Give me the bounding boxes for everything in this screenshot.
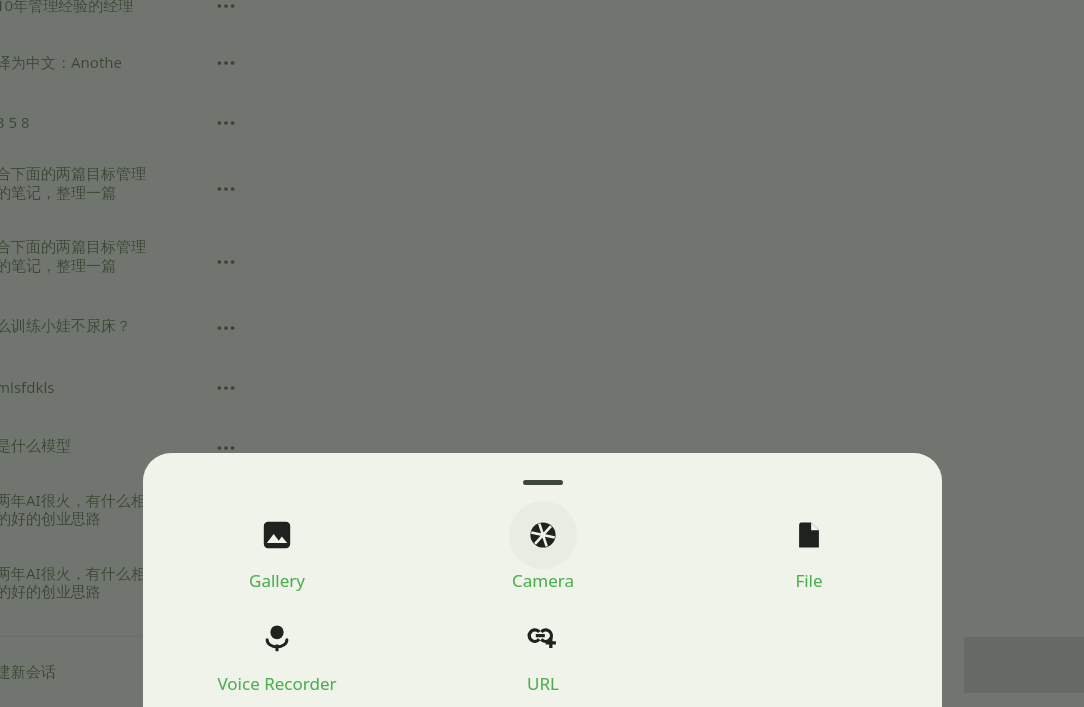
staticText: 两年AI很火，有什么相 [0, 490, 146, 510]
button[interactable]: 建新会话 [0, 637, 268, 707]
button[interactable]: More options [208, 45, 244, 81]
button[interactable]: More options [208, 310, 244, 346]
staticText: URL [527, 672, 559, 695]
staticText: 的笔记，整理一篇 [0, 257, 116, 276]
staticText: Gallery [249, 569, 305, 592]
staticText: 么训练小娃不尿床？ [0, 317, 131, 336]
button[interactable]: Gallery [143, 501, 410, 592]
staticText: 的好的创业思路 [0, 510, 101, 529]
staticText: 译为中文：Anothe [0, 52, 123, 72]
staticText: 是什么模型 [0, 437, 71, 456]
staticText: Voice Recorder [217, 672, 337, 695]
button[interactable]: Camera [410, 501, 676, 592]
staticText: 的笔记，整理一篇 [0, 184, 116, 203]
staticText: Camera [512, 569, 574, 592]
button[interactable]: More options [208, 244, 244, 280]
button[interactable]: File [676, 501, 942, 592]
staticText: 3 5 8 [0, 112, 30, 132]
button[interactable]: More options [208, 370, 244, 406]
staticText: 10年管理经验的经理 [0, 0, 134, 15]
staticText: File [795, 569, 823, 592]
button[interactable]: More options [208, 430, 244, 466]
staticText: 建新会话 [0, 663, 56, 682]
staticText: 的好的创业思路 [0, 583, 101, 602]
staticText: 两年AI很火，有什么相 [0, 563, 146, 583]
staticText: mlsfdkls [0, 377, 55, 397]
button[interactable]: More options [208, 105, 244, 141]
staticText: 合下面的两篇目标管理 [0, 238, 146, 257]
button[interactable]: URL [410, 604, 676, 695]
button[interactable]: Voice Recorder [143, 604, 410, 695]
button[interactable]: More options [208, 171, 244, 207]
staticText: 合下面的两篇目标管理 [0, 165, 146, 184]
button[interactable]: More options [208, 0, 244, 24]
